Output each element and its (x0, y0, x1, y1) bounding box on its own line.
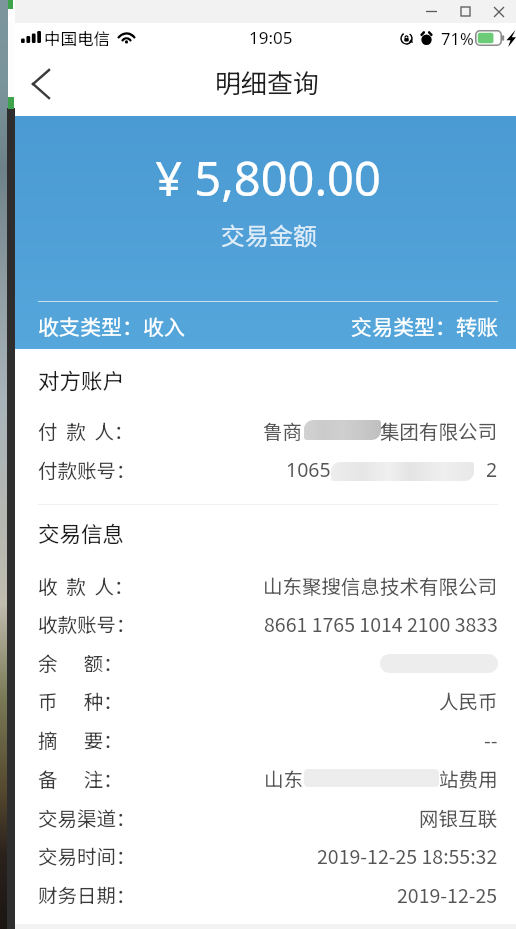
staticText: 集团有限公司 (380, 416, 498, 444)
staticText: ¥ 5,800.00 (155, 146, 381, 210)
staticText: 交易渠道： (38, 803, 136, 831)
staticText: 交易类型：转账 (351, 311, 498, 341)
staticText: 2019-12-25 18:55:32 (317, 841, 498, 869)
staticText: 明细查询 (215, 63, 320, 101)
staticText: 2019-12-25 (397, 880, 498, 908)
staticText: 1 0000 7001 (351, 459, 467, 481)
staticText: 鲁商 (263, 416, 303, 444)
staticText: 摘 要： (38, 725, 123, 753)
staticText: 余 额： (38, 648, 123, 676)
staticText: 1065 (286, 456, 331, 483)
button[interactable]: Close (482, 0, 516, 23)
button[interactable]: Back (15, 52, 67, 116)
staticText: 收支类型：收入 (38, 311, 185, 341)
staticText: 对方账户 (38, 364, 125, 394)
staticText: 19:05 (249, 26, 293, 49)
staticText: 付款账号： (38, 455, 136, 483)
staticText: 2 (486, 456, 498, 483)
staticText: 交易时间： (38, 841, 136, 869)
staticText: 币 种： (38, 686, 123, 714)
staticText: 人民币 (439, 686, 498, 714)
staticText: 交易金额 (221, 217, 317, 251)
staticText: 71% (441, 27, 474, 49)
staticText: 付 款 人： (38, 416, 134, 444)
button[interactable]: Maximize (448, 0, 482, 23)
staticText: 备 注： (38, 764, 123, 792)
staticText: 站费用 (439, 764, 498, 792)
staticText: 网银互联 (419, 803, 498, 831)
staticText: 山东聚搜信息技术有限公司 (263, 571, 498, 599)
staticText: 收 款 人： (38, 571, 134, 599)
staticText: 交易信息 (38, 517, 125, 547)
button[interactable]: Minimize (415, 0, 448, 23)
staticText: 中国电信 (44, 26, 110, 50)
staticText: 山东 (264, 764, 304, 792)
staticText: -- (484, 725, 498, 753)
staticText: 8661 1765 1014 2100 3833 (264, 609, 498, 637)
staticText: 财务日期： (38, 880, 136, 908)
staticText: 收款账号： (38, 609, 136, 637)
